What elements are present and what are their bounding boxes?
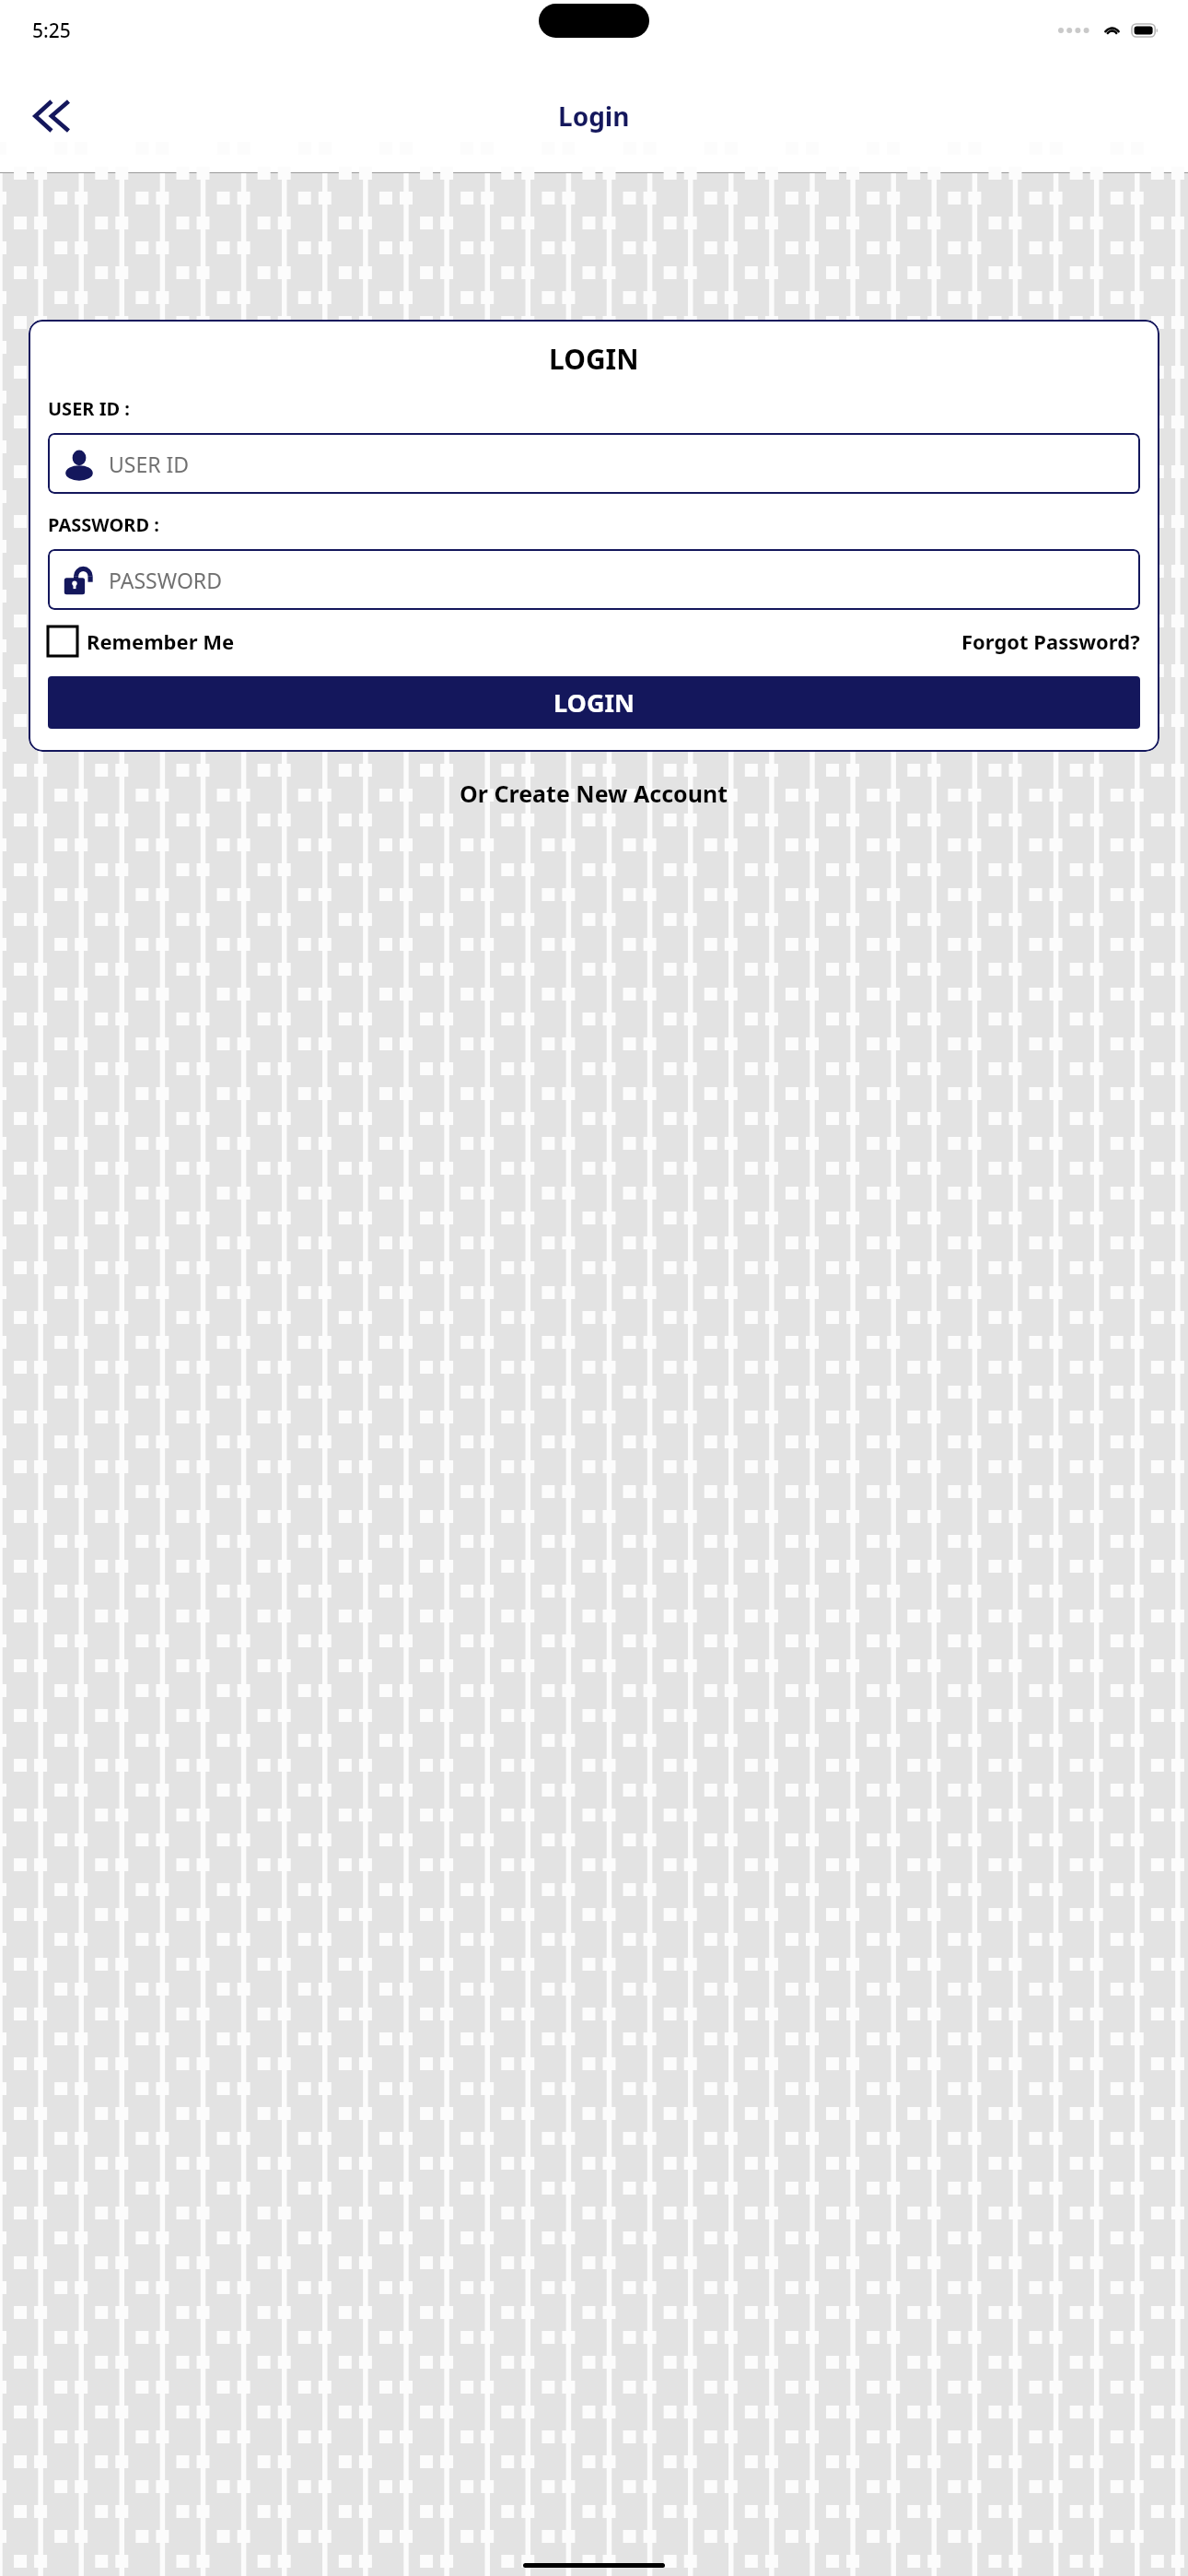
staticText: PASSWORD (109, 566, 222, 594)
button[interactable]: Or Create New Account (460, 778, 728, 809)
staticText: PASSWORD : (48, 512, 159, 537)
staticText: Remember Me (87, 627, 235, 655)
button[interactable]: USER ID (48, 433, 1140, 494)
staticText: Login (558, 99, 630, 134)
button[interactable]: Back (22, 87, 81, 146)
button[interactable]: PASSWORD (48, 549, 1140, 610)
staticText: LOGIN (553, 685, 635, 720)
button[interactable]: LOGIN (48, 676, 1140, 729)
button[interactable]: Forgot Password? (961, 627, 1140, 655)
staticText: USER ID : (48, 396, 130, 421)
staticText: LOGIN (549, 340, 639, 378)
staticText: 5:25 (32, 18, 71, 44)
button[interactable]: Remember Me (48, 626, 235, 656)
staticText: USER ID (109, 450, 190, 478)
